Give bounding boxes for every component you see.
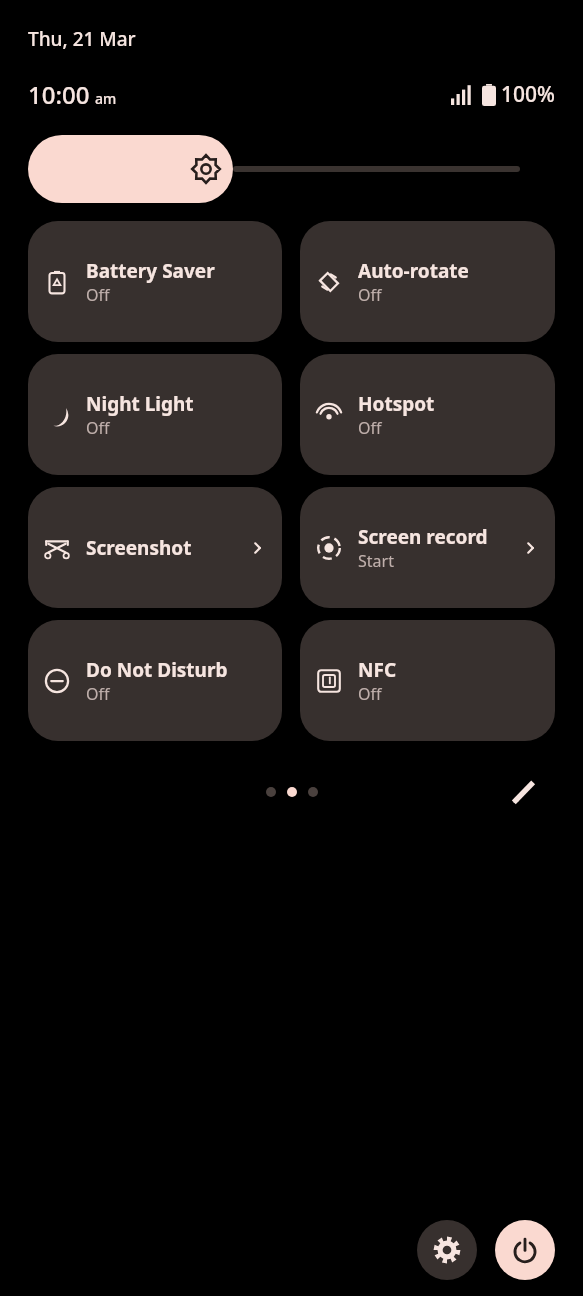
staticText: Thu, 21 Mar: [28, 26, 136, 52]
staticText: Off: [358, 417, 382, 439]
staticText: Battery Saver: [86, 258, 215, 284]
staticText: 100%: [501, 80, 555, 109]
button[interactable]: Do Not Disturb: [28, 620, 282, 741]
staticText: Off: [358, 284, 382, 306]
button[interactable]: Power: [495, 1220, 555, 1280]
button[interactable]: Battery Saver: [28, 221, 282, 342]
staticText: Off: [86, 417, 110, 439]
staticText: Off: [86, 284, 110, 306]
staticText: Auto-rotate: [358, 258, 469, 284]
staticText: Off: [86, 683, 110, 705]
staticText: Screen record: [358, 524, 488, 550]
button[interactable]: Screen record: [300, 487, 555, 608]
staticText: am: [95, 89, 117, 108]
staticText: Do Not Disturb: [86, 657, 228, 683]
staticText: Off: [358, 683, 382, 705]
button[interactable]: Night Light: [28, 354, 282, 475]
staticText: NFC: [358, 657, 397, 683]
staticText: Screenshot: [86, 535, 192, 561]
staticText: Start: [358, 550, 394, 572]
staticText: Night Light: [86, 391, 194, 417]
button[interactable]: Edit tiles: [507, 775, 541, 809]
button[interactable]: Hotspot: [300, 354, 555, 475]
staticText: 10:00: [28, 78, 90, 111]
staticText: Hotspot: [358, 391, 435, 417]
button[interactable]: Screenshot: [28, 487, 282, 608]
button[interactable]: [28, 133, 555, 205]
button[interactable]: Auto-rotate: [300, 221, 555, 342]
button[interactable]: NFC: [300, 620, 555, 741]
button[interactable]: Settings: [417, 1220, 477, 1280]
